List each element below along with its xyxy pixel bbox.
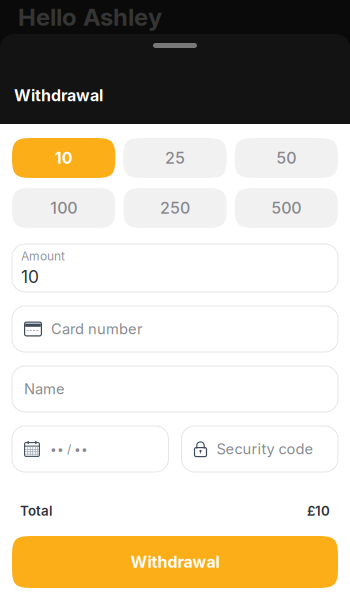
staticText: Security code	[216, 440, 313, 458]
staticText: £10	[307, 503, 330, 519]
staticText: Hello Ashley	[18, 2, 162, 31]
button[interactable]: 50	[235, 138, 338, 178]
button[interactable]: Name	[12, 366, 338, 412]
button[interactable]: 250	[123, 188, 227, 228]
staticText: 50	[276, 148, 296, 168]
staticText: Name	[24, 380, 65, 398]
staticText: Total	[20, 503, 52, 519]
staticText: Amount	[21, 249, 65, 263]
staticText: 500	[271, 198, 301, 218]
staticText: Withdrawal	[130, 552, 219, 572]
staticText: 10	[55, 148, 73, 168]
staticText: Card number	[51, 320, 143, 338]
staticText: Withdrawal	[14, 86, 103, 105]
button[interactable]: Security code	[181, 426, 338, 472]
staticText: •• / ••	[50, 442, 88, 456]
button[interactable]: •• / ••	[12, 426, 168, 472]
staticText: 100	[50, 198, 77, 218]
button[interactable]: Amount	[12, 244, 338, 292]
staticText: 250	[160, 198, 190, 218]
button[interactable]: 25	[123, 138, 227, 178]
button[interactable]: Card number	[12, 306, 338, 352]
button[interactable]: 100	[12, 188, 115, 228]
staticText: 10	[21, 266, 39, 287]
button[interactable]: Withdrawal	[12, 536, 338, 588]
button[interactable]: 10	[12, 138, 115, 178]
staticText: 25	[165, 148, 185, 168]
button[interactable]: 500	[235, 188, 338, 228]
